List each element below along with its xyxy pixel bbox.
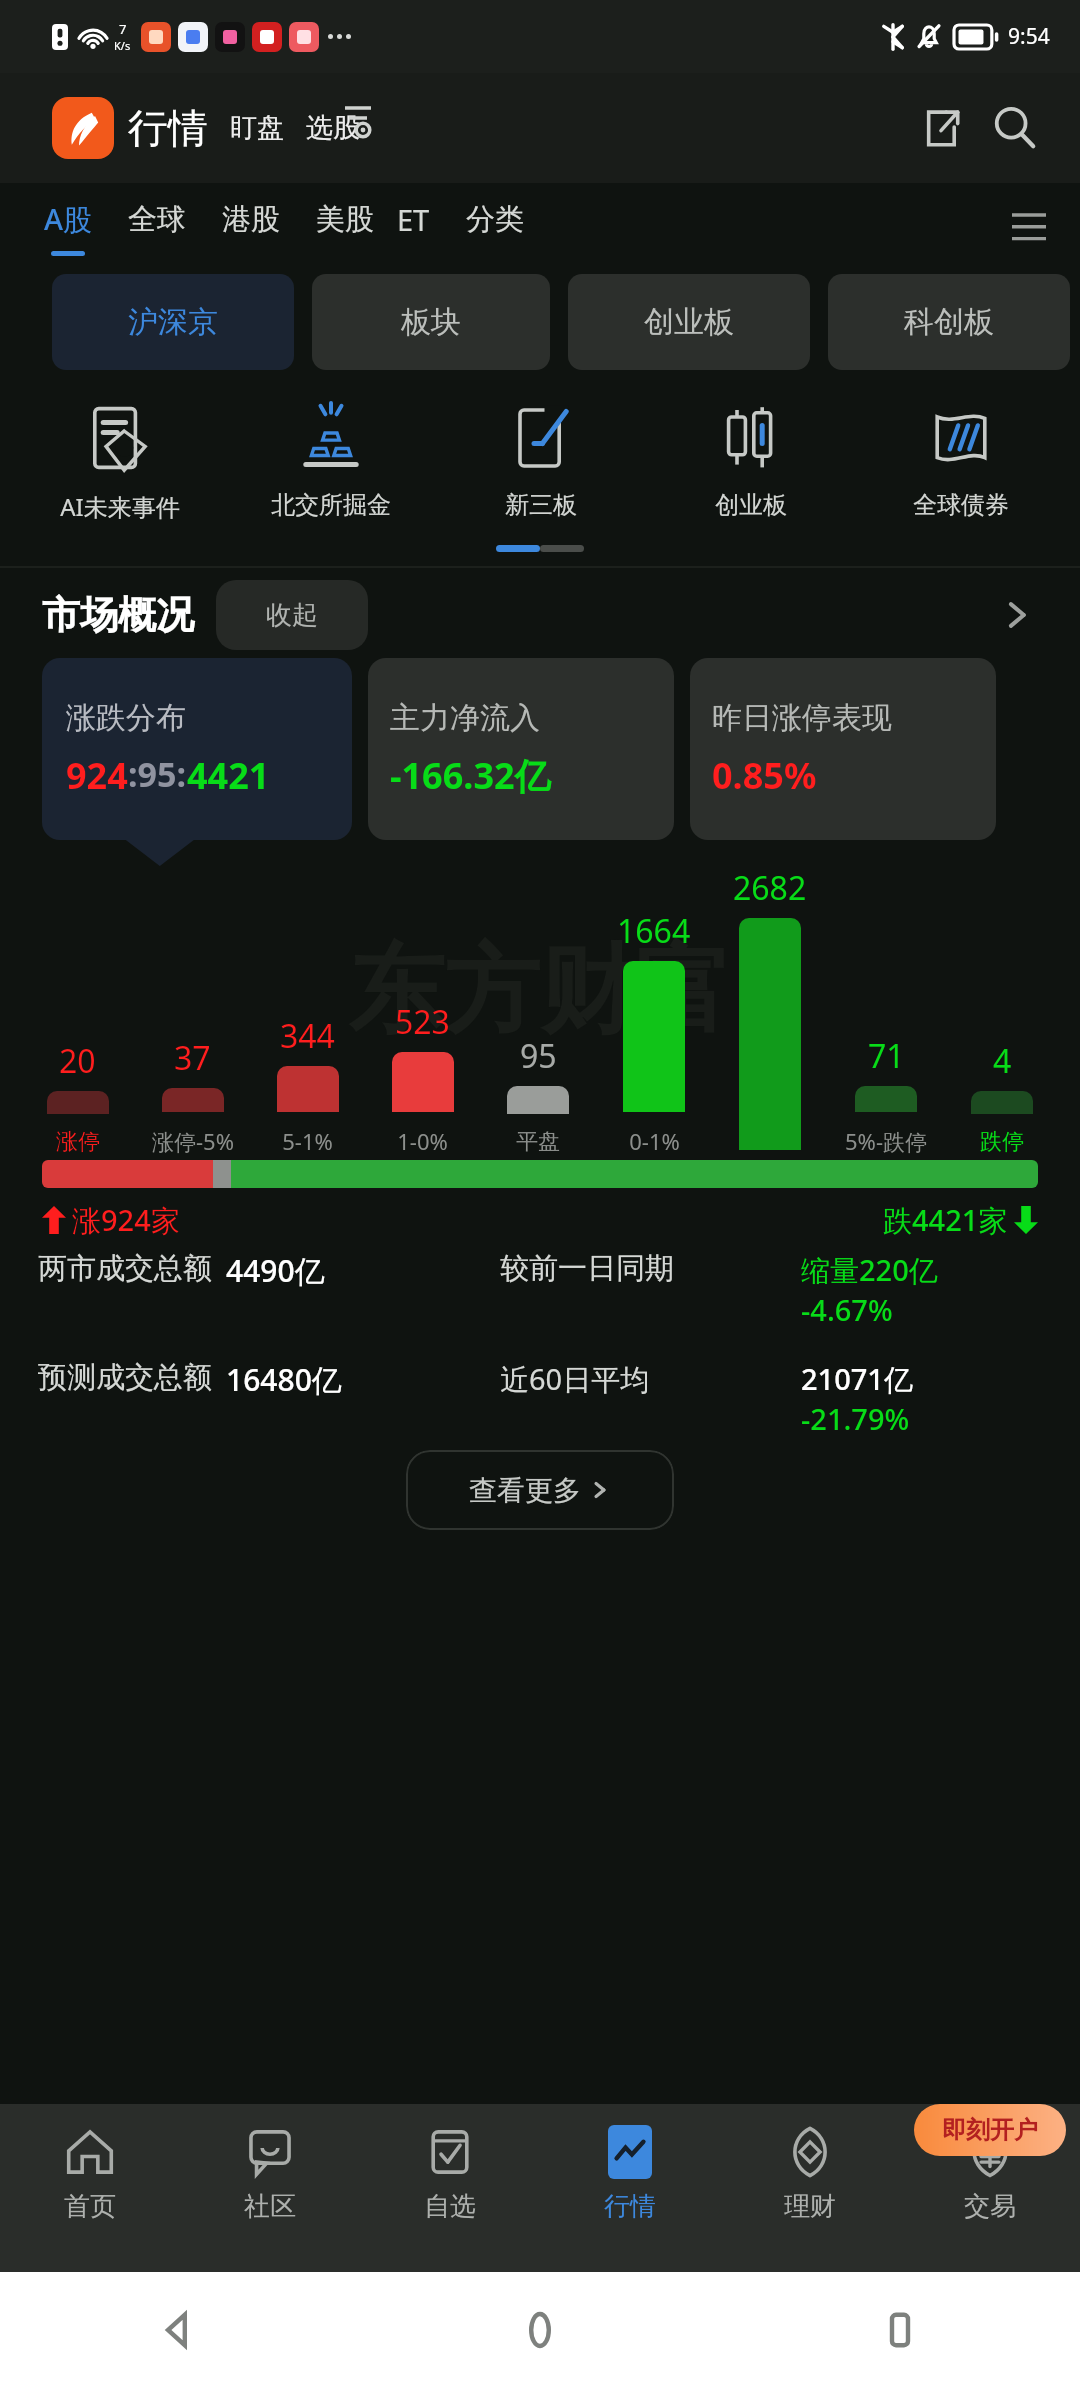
staticText: 1664	[617, 909, 691, 953]
staticText: 理财	[784, 2190, 836, 2223]
button[interactable]: Home	[505, 2295, 575, 2365]
staticText: 涨停	[56, 1128, 100, 1156]
staticText: 分类	[466, 201, 524, 238]
staticText: 20	[59, 1039, 96, 1083]
staticText: 0.85%	[712, 751, 817, 800]
staticText: 港股	[222, 201, 280, 238]
staticText: 新三板	[505, 490, 577, 520]
button[interactable]: 新三板	[436, 400, 646, 520]
staticText: :95:	[128, 751, 187, 797]
staticText: 0-1%	[629, 1126, 680, 1156]
button[interactable]: 收起	[216, 580, 368, 650]
button[interactable]: 创业板	[646, 400, 856, 520]
staticText: 涨924家	[72, 1200, 180, 1240]
staticText: 924	[66, 751, 128, 800]
staticText: 沪深京	[128, 303, 218, 341]
button[interactable]: 板块	[312, 274, 550, 370]
staticText: 北交所掘金	[271, 490, 391, 520]
staticText: A股	[44, 199, 92, 239]
staticText: 交易	[964, 2190, 1016, 2223]
staticText: 主力净流入	[390, 699, 540, 737]
staticText: 4	[993, 1039, 1012, 1083]
button[interactable]: 美股	[312, 201, 378, 255]
staticText: 创业板	[715, 490, 787, 520]
staticText: 盯盘	[230, 111, 284, 145]
staticText: 较前一日同期	[500, 1250, 674, 1287]
button[interactable]: 即刻开户	[914, 2104, 1066, 2156]
staticText: 自选	[424, 2190, 476, 2223]
staticText: 预测成交总额	[38, 1359, 212, 1396]
staticText: 全球	[128, 201, 186, 238]
staticText: 16480亿	[226, 1359, 342, 1400]
button[interactable]: 首页	[0, 2122, 180, 2223]
button[interactable]: 港股	[218, 201, 284, 255]
button[interactable]: 昨日涨停表现	[690, 658, 996, 840]
button[interactable]: 全球债券	[856, 400, 1066, 520]
button[interactable]: 主力净流入	[368, 658, 674, 840]
staticText: 9:54	[1008, 22, 1050, 51]
staticText: 查看更多	[469, 1473, 581, 1508]
staticText: 行情	[604, 2190, 656, 2223]
staticText: -4.67%	[801, 1290, 893, 1329]
staticText: 两市成交总额	[38, 1250, 212, 1287]
staticText: 7	[119, 20, 127, 38]
button[interactable]: Back	[145, 2295, 215, 2365]
staticText: 社区	[244, 2190, 296, 2223]
button[interactable]: AI未来事件	[14, 400, 225, 523]
staticText: 涨停-5%	[152, 1126, 234, 1156]
button[interactable]: 理财	[720, 2122, 900, 2223]
staticText: AI未来事件	[60, 490, 180, 523]
staticText: 昨日涨停表现	[712, 699, 892, 737]
staticText: K/s	[114, 38, 131, 53]
staticText: 4490亿	[226, 1250, 325, 1291]
staticText: 全球债券	[913, 490, 1009, 520]
button[interactable]: Share	[912, 99, 970, 157]
staticText: 523	[395, 1000, 450, 1044]
button[interactable]: Open market overview	[990, 588, 1044, 642]
staticText: -21.79%	[801, 1399, 910, 1438]
staticText: 5%-跌停	[845, 1126, 927, 1156]
button[interactable]: 分类	[462, 201, 528, 255]
staticText: 美股	[316, 201, 374, 238]
staticText: 平盘	[516, 1128, 560, 1156]
button[interactable]: Search	[986, 99, 1044, 157]
button[interactable]: 交易	[900, 2122, 1080, 2223]
button[interactable]: 科创板	[828, 274, 1070, 370]
button[interactable]: 北交所掘金	[225, 400, 436, 520]
button[interactable]: More tabs	[1004, 203, 1054, 253]
button[interactable]: A股	[40, 199, 96, 256]
button[interactable]: 全球	[124, 201, 190, 255]
button[interactable]: 选股	[306, 108, 360, 148]
staticText: 71	[868, 1034, 905, 1078]
staticText: 市场概况	[42, 591, 194, 639]
staticText: 21071亿	[801, 1359, 913, 1399]
button[interactable]: 查看更多	[406, 1450, 674, 1530]
staticText: 收起	[266, 599, 318, 632]
staticText: 344	[280, 1014, 335, 1058]
staticText: 跌4421家	[883, 1200, 1008, 1240]
button[interactable]: Recents	[865, 2295, 935, 2365]
staticText: 近60日平均	[500, 1359, 650, 1399]
staticText: 涨跌分布	[66, 699, 186, 737]
staticText: 1-0%	[397, 1126, 448, 1156]
staticText: 4421	[187, 751, 270, 800]
staticText: 板块	[401, 303, 461, 341]
staticText: 跌停	[980, 1128, 1024, 1156]
button[interactable]: 盯盘	[230, 111, 284, 145]
button[interactable]: 自选	[360, 2122, 540, 2223]
staticText: 37	[174, 1036, 211, 1080]
button[interactable]: 沪深京	[52, 274, 294, 370]
button[interactable]: 创业板	[568, 274, 810, 370]
button[interactable]: ET	[392, 200, 434, 256]
staticText: ET	[397, 200, 430, 239]
staticText: -166.32亿	[390, 751, 551, 800]
staticText: 即刻开户	[942, 2115, 1038, 2145]
button[interactable]: 涨跌分布	[42, 658, 352, 840]
staticText: 2682	[733, 866, 807, 910]
staticText: 5-1%	[282, 1126, 333, 1156]
staticText: 缩量220亿	[801, 1250, 938, 1290]
button[interactable]: 社区	[180, 2122, 360, 2223]
staticText: 首页	[64, 2190, 116, 2223]
button[interactable]: 行情	[540, 2122, 720, 2223]
staticText: 选股	[306, 111, 360, 145]
